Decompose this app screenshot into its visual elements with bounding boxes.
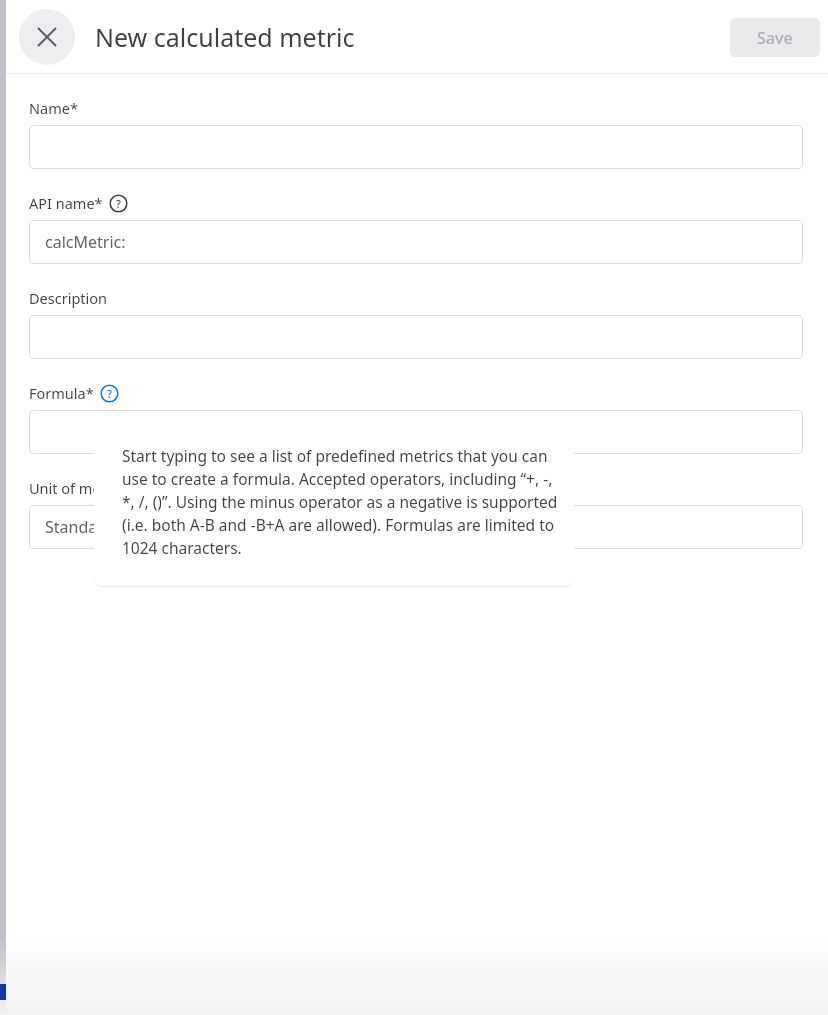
staticText: calcMetric: — [45, 231, 126, 253]
staticText: Unit of measurement — [29, 478, 175, 498]
staticText: Save — [757, 27, 793, 49]
button[interactable]: API name help — [109, 194, 128, 213]
staticText: API name* — [29, 193, 103, 213]
staticText: Standard — [45, 516, 114, 538]
staticText: Start typing to see a list of predefined… — [122, 445, 558, 559]
button[interactable]: Formula help — [100, 384, 119, 403]
staticText: Formula* — [29, 383, 94, 403]
button[interactable] — [29, 410, 803, 454]
staticText: ? — [116, 196, 121, 211]
button[interactable]: Standard — [29, 505, 803, 549]
button[interactable]: Save — [730, 18, 820, 57]
staticText: New calculated metric — [95, 20, 355, 54]
button[interactable] — [29, 315, 803, 359]
staticText: Description — [29, 288, 108, 308]
button[interactable] — [29, 125, 803, 169]
staticText: Name* — [29, 98, 78, 118]
button[interactable]: calcMetric: — [29, 220, 803, 264]
button[interactable]: Close — [19, 9, 75, 65]
staticText: ? — [107, 386, 112, 401]
